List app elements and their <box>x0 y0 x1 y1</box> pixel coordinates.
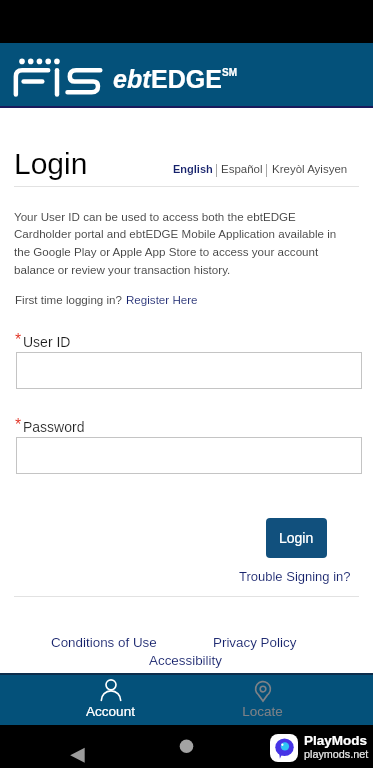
button[interactable]: Conditions of Use <box>51 635 157 650</box>
staticText: EDGE <box>151 65 222 93</box>
staticText: Password <box>23 419 85 435</box>
button[interactable]: Account <box>64 673 157 725</box>
staticText: PlayMods <box>304 733 368 748</box>
button[interactable]: English <box>173 163 213 175</box>
staticText: Login <box>279 530 314 546</box>
button[interactable]: Kreyòl Ayisyen <box>272 163 348 176</box>
staticText: Login <box>14 147 88 181</box>
staticText: Your User ID can be used to access both … <box>14 210 350 277</box>
button[interactable] <box>16 352 362 389</box>
staticText: SM <box>222 67 237 78</box>
staticText: Account <box>64 704 157 719</box>
button[interactable]: Home <box>174 734 198 758</box>
staticText: Locate <box>216 704 309 719</box>
button[interactable]: Back <box>66 734 90 758</box>
button[interactable]: Accessibility <box>149 653 222 668</box>
button[interactable]: Locate <box>216 673 309 725</box>
staticText: * <box>15 416 22 434</box>
button[interactable] <box>16 437 362 474</box>
button[interactable]: Español <box>221 163 263 176</box>
button[interactable]: Login <box>266 518 327 558</box>
staticText: First time logging in? <box>15 293 126 306</box>
button[interactable]: Register Here <box>126 293 198 306</box>
staticText: playmods.net <box>304 748 369 760</box>
staticText: ebt <box>113 65 151 93</box>
staticText: * <box>15 331 22 349</box>
staticText: User ID <box>23 334 71 350</box>
button[interactable]: Privacy Policy <box>213 635 297 650</box>
button[interactable]: Trouble Signing in? <box>239 569 351 584</box>
